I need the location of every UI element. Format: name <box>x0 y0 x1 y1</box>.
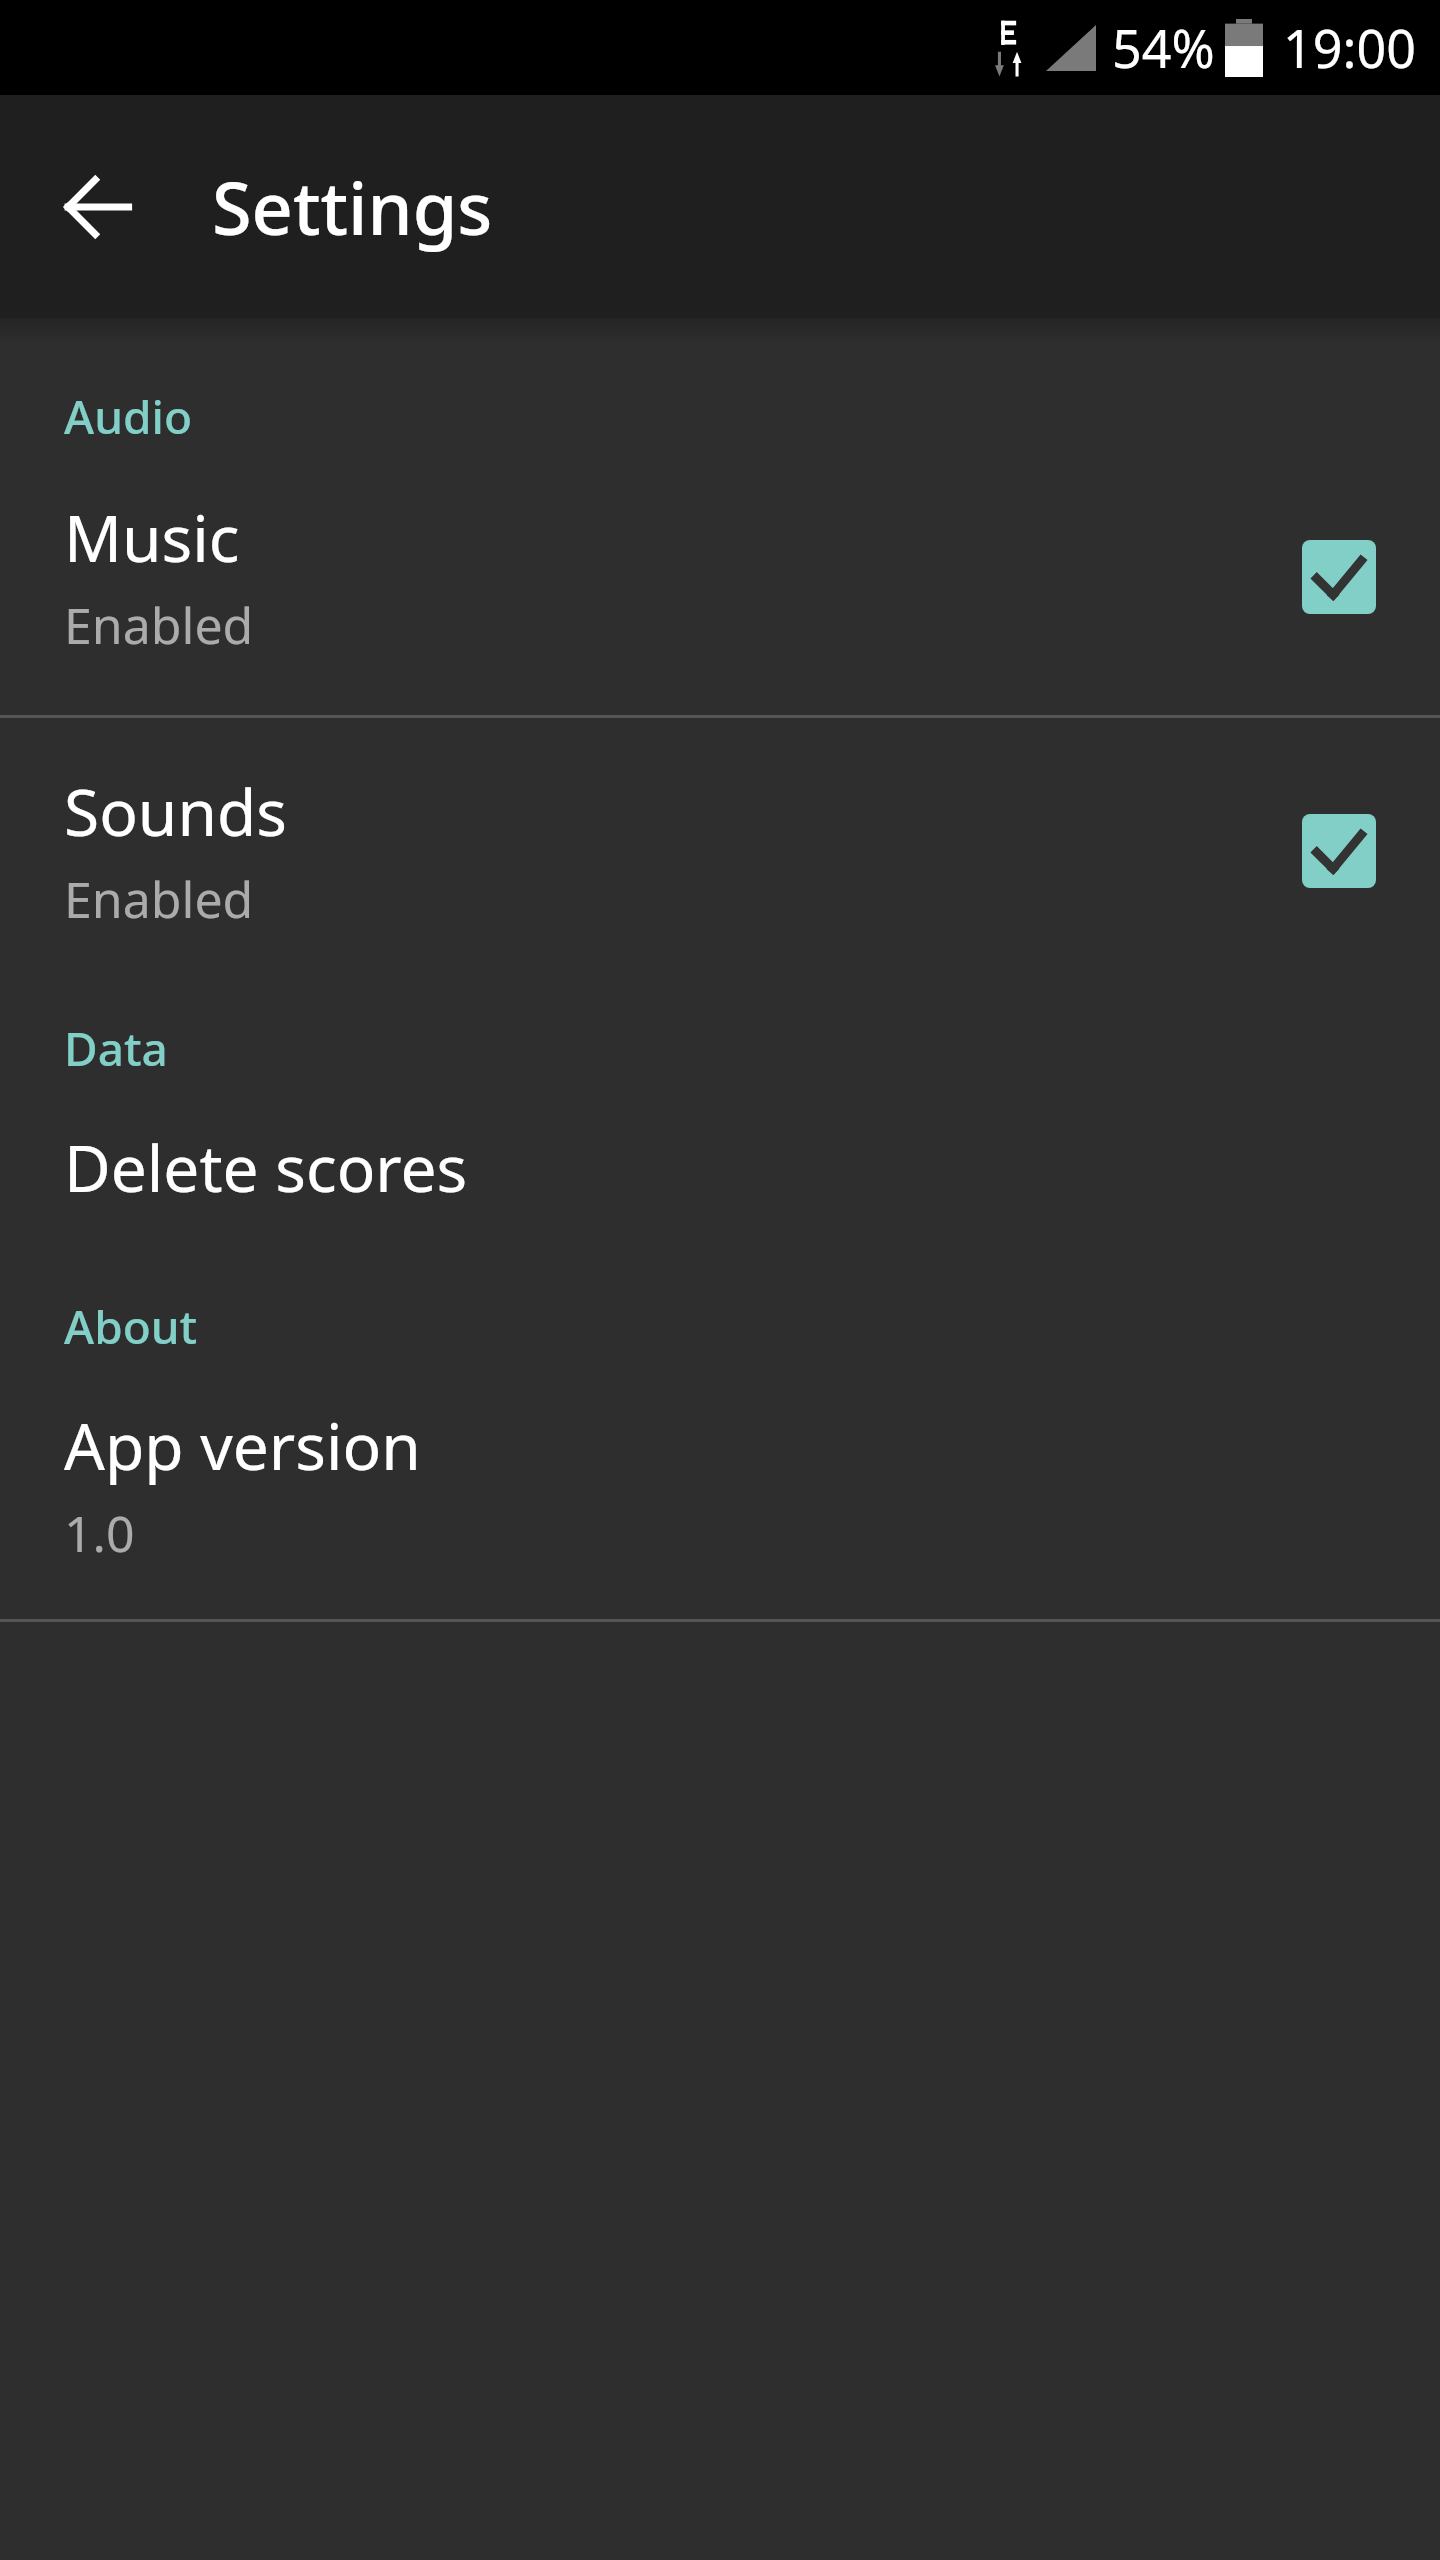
staticText: Settings <box>212 158 493 256</box>
button[interactable]: Toggle <box>1302 814 1376 888</box>
staticText: About <box>64 1295 198 1358</box>
staticText: Enabled <box>64 591 254 659</box>
button[interactable]: Delete scores <box>0 1124 1440 1211</box>
button[interactable]: App version <box>0 1402 1440 1567</box>
staticText: 54% <box>1112 12 1215 83</box>
button[interactable]: Back <box>40 149 156 265</box>
staticText: Audio <box>64 385 193 448</box>
button[interactable]: Sounds <box>0 768 1440 933</box>
staticText: Music <box>64 494 240 581</box>
staticText: Delete scores <box>64 1124 468 1211</box>
staticText: Sounds <box>64 768 287 855</box>
button[interactable]: Toggle <box>1302 540 1376 614</box>
staticText: 1.0 <box>64 1499 135 1567</box>
staticText: Enabled <box>64 865 254 933</box>
button[interactable]: Music <box>0 494 1440 659</box>
staticText: 19:00 <box>1283 12 1416 83</box>
staticText: App version <box>64 1402 421 1489</box>
staticText: Data <box>64 1017 168 1080</box>
